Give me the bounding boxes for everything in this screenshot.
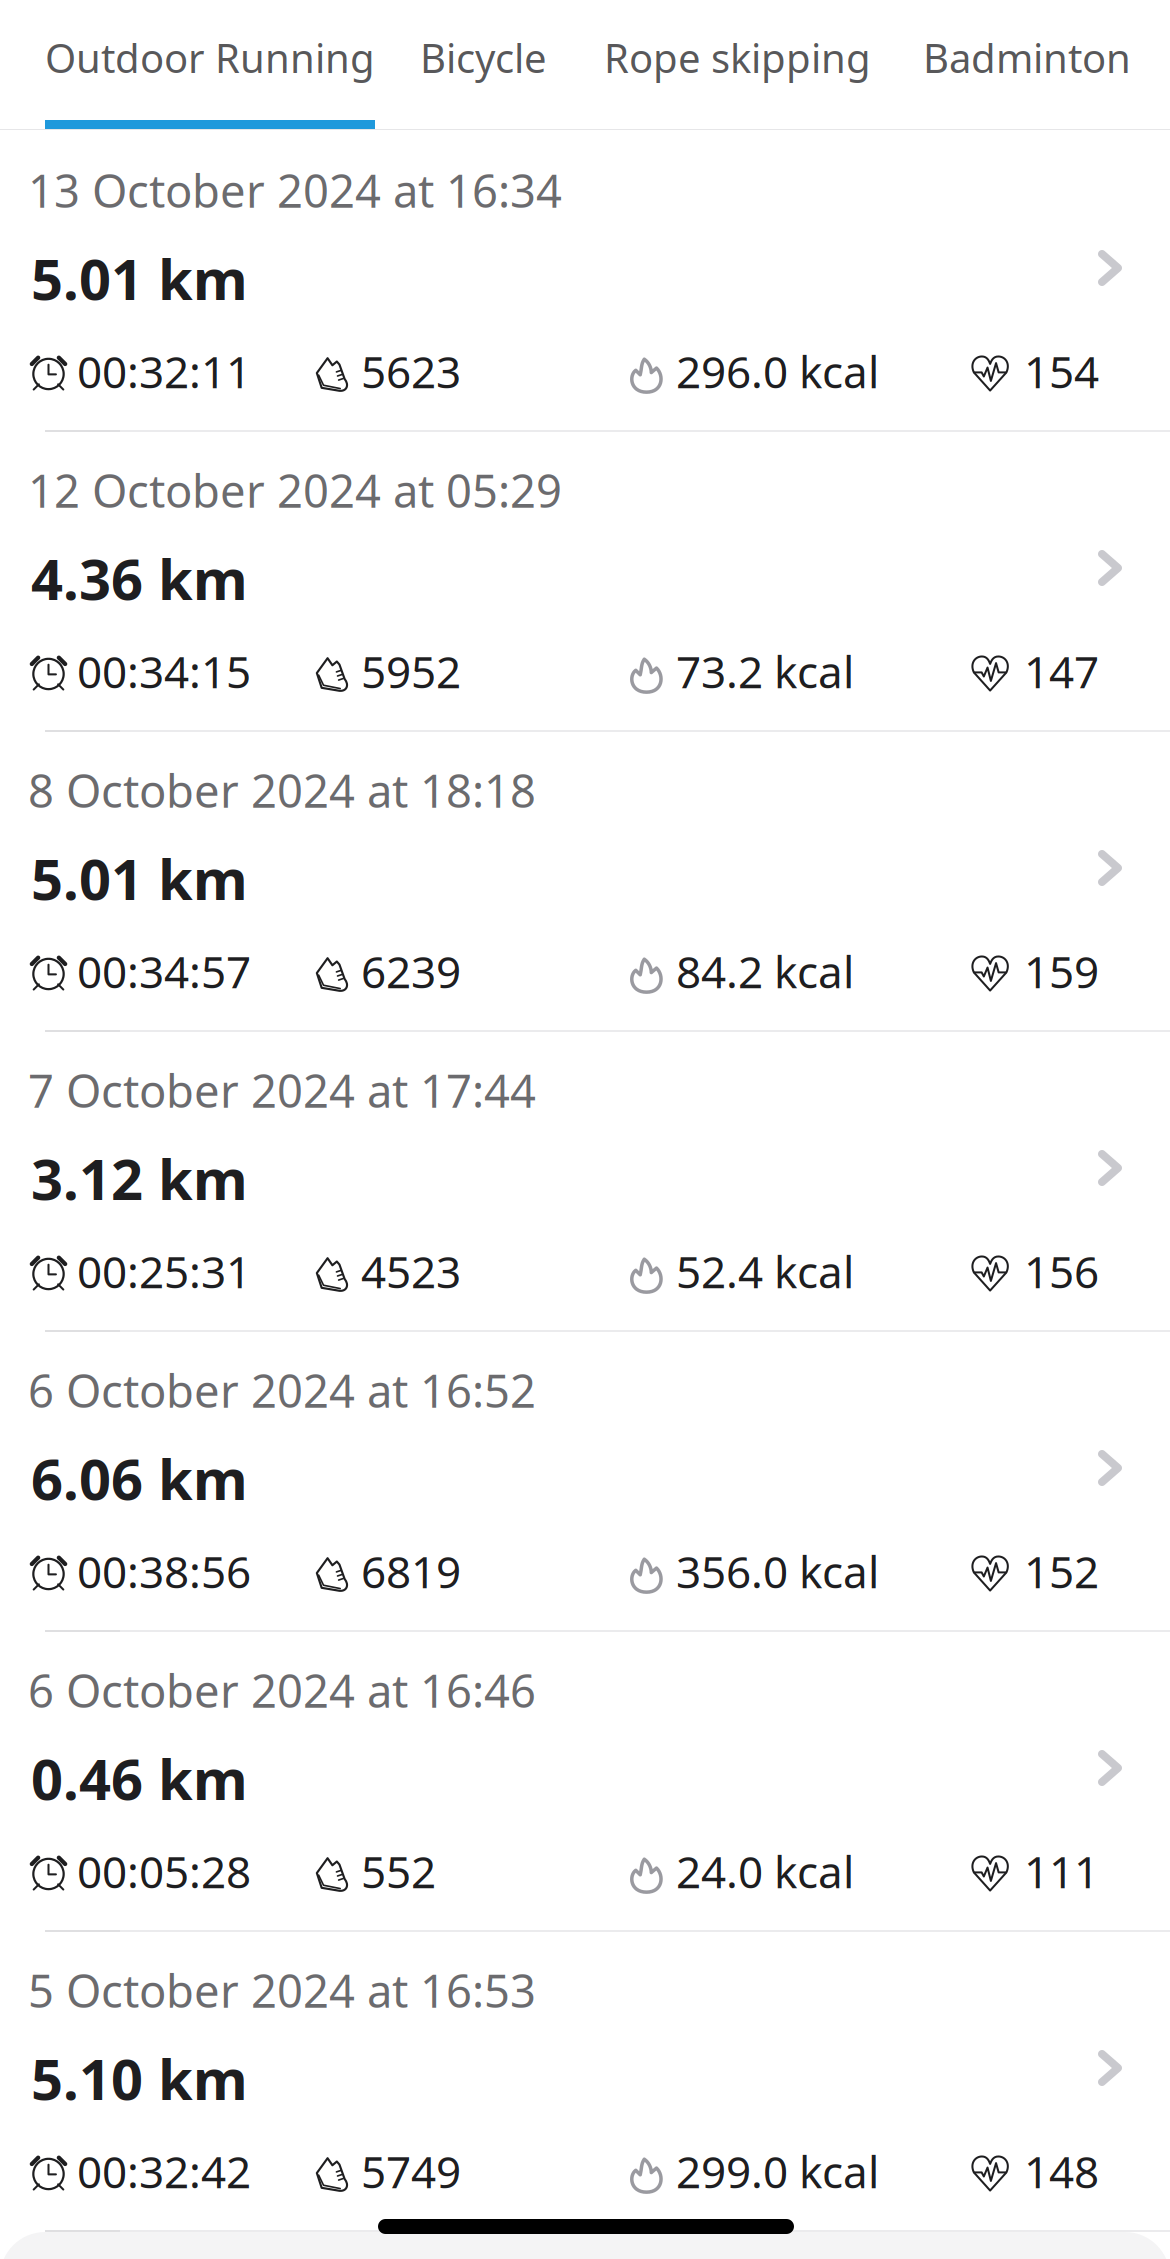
staticText: 73.2 kcal xyxy=(676,642,854,700)
staticText: 6239 xyxy=(361,942,461,1000)
button[interactable]: Badminton xyxy=(923,31,1131,84)
staticText: 5.01 km xyxy=(31,841,248,915)
button[interactable]: 8 October 2024 at 18:18 xyxy=(0,730,1170,1030)
staticText: 148 xyxy=(1024,2142,1099,2200)
staticText: 5952 xyxy=(361,642,461,700)
staticText: 5623 xyxy=(361,342,461,400)
button[interactable]: 5 October 2024 at 16:53 xyxy=(0,1930,1170,2230)
staticText: 154 xyxy=(1024,342,1099,400)
staticText: 6819 xyxy=(361,1542,461,1600)
button[interactable]: 6 October 2024 at 16:52 xyxy=(0,1330,1170,1630)
staticText: 8 October 2024 at 18:18 xyxy=(28,760,536,820)
staticText: 296.0 kcal xyxy=(676,342,879,400)
button[interactable]: Rope skipping xyxy=(604,31,871,84)
staticText: 00:34:57 xyxy=(77,942,251,1000)
staticText: 00:32:42 xyxy=(77,2142,251,2200)
staticText: Bicycle xyxy=(420,31,547,84)
staticText: 00:25:31 xyxy=(77,1242,251,1300)
staticText: 5749 xyxy=(361,2142,461,2200)
button[interactable]: Outdoor Running xyxy=(45,31,375,84)
staticText: 299.0 kcal xyxy=(676,2142,879,2200)
staticText: 0.46 km xyxy=(31,1741,248,1815)
staticText: 13 October 2024 at 16:34 xyxy=(28,160,562,220)
staticText: 00:38:56 xyxy=(77,1542,251,1600)
staticText: 5 October 2024 at 16:53 xyxy=(28,1960,536,2020)
staticText: 84.2 kcal xyxy=(676,942,854,1000)
staticText: 147 xyxy=(1024,642,1099,700)
staticText: 4.36 km xyxy=(31,541,248,615)
staticText: 156 xyxy=(1024,1242,1099,1300)
staticText: 00:05:28 xyxy=(77,1842,251,1900)
button[interactable]: 6 October 2024 at 16:46 xyxy=(0,1630,1170,1930)
staticText: 00:32:11 xyxy=(77,342,251,400)
staticText: 5.10 km xyxy=(31,2041,248,2115)
staticText: 6 October 2024 at 16:46 xyxy=(28,1660,536,1720)
staticText: 552 xyxy=(361,1842,436,1900)
staticText: 24.0 kcal xyxy=(676,1842,854,1900)
staticText: 3.12 km xyxy=(31,1141,248,1215)
staticText: 4523 xyxy=(361,1242,461,1300)
staticText: 6 October 2024 at 16:52 xyxy=(28,1360,536,1420)
staticText: Badminton xyxy=(923,31,1131,84)
button[interactable]: Bicycle xyxy=(420,31,547,84)
staticText: 12 October 2024 at 05:29 xyxy=(28,460,562,520)
staticText: Outdoor Running xyxy=(45,31,375,84)
button[interactable]: 13 October 2024 at 16:34 xyxy=(0,130,1170,430)
staticText: 6.06 km xyxy=(31,1441,248,1515)
staticText: 52.4 kcal xyxy=(676,1242,854,1300)
staticText: 5.01 km xyxy=(31,241,248,315)
staticText: 159 xyxy=(1024,942,1099,1000)
button[interactable]: 7 October 2024 at 17:44 xyxy=(0,1030,1170,1330)
staticText: 7 October 2024 at 17:44 xyxy=(28,1060,536,1120)
staticText: 00:34:15 xyxy=(77,642,251,700)
staticText: 111 xyxy=(1024,1842,1099,1900)
staticText: Rope skipping xyxy=(604,31,871,84)
staticText: 356.0 kcal xyxy=(676,1542,879,1600)
staticText: 152 xyxy=(1024,1542,1099,1600)
button[interactable]: 12 October 2024 at 05:29 xyxy=(0,430,1170,730)
